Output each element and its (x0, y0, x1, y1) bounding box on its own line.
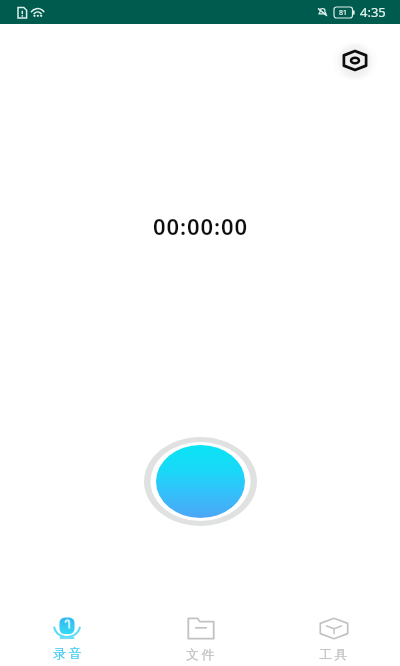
button[interactable]: 录音 (0, 604, 134, 666)
staticText: 文件 (186, 646, 217, 662)
staticText: 4:35 (360, 3, 386, 21)
staticText: 录音 (53, 645, 84, 661)
button[interactable]: Settings (333, 43, 377, 80)
staticText: 00:00:00 (153, 211, 248, 241)
button[interactable]: 工具 (267, 604, 400, 666)
button[interactable]: 文件 (134, 604, 267, 666)
staticText: 工具 (319, 646, 350, 662)
staticText: 81 (339, 8, 348, 18)
button[interactable]: Record (144, 437, 257, 526)
